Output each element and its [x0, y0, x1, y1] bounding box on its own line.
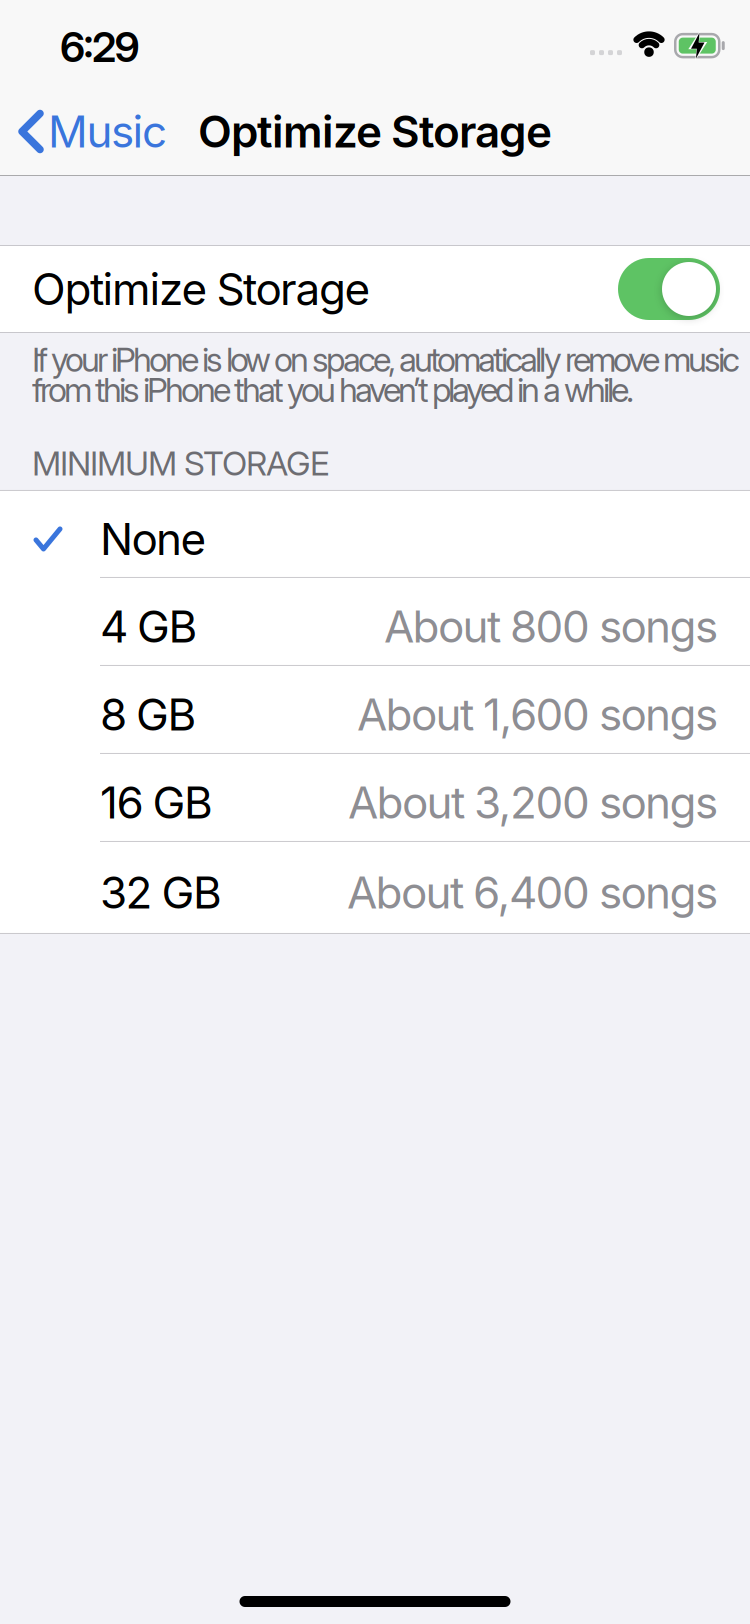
staticText: 32 GB: [100, 866, 222, 918]
staticText: Music: [48, 105, 167, 157]
staticText: 8 GB: [100, 688, 196, 740]
staticText: About 1,600 songs: [357, 688, 718, 740]
staticText: MINIMUM STORAGE: [32, 444, 330, 483]
staticText: About 800 songs: [384, 600, 718, 652]
button[interactable]: 16 GB: [0, 754, 750, 841]
staticText: 4 GB: [100, 600, 197, 652]
staticText: 16 GB: [100, 776, 213, 828]
staticText: If your iPhone is low on space, automati…: [32, 340, 740, 410]
staticText: Optimize Storage: [198, 105, 552, 157]
button[interactable]: Optimize Storage: [618, 258, 720, 320]
staticText: Optimize Storage: [32, 263, 370, 315]
button[interactable]: None: [0, 491, 750, 577]
staticText: About 6,400 songs: [347, 866, 718, 918]
staticText: About 3,200 songs: [348, 776, 718, 828]
button[interactable]: 8 GB: [0, 666, 750, 753]
button[interactable]: 4 GB: [0, 578, 750, 665]
button[interactable]: Back: [0, 105, 167, 157]
staticText: 6:29: [60, 23, 139, 71]
button[interactable]: 32 GB: [0, 842, 750, 933]
staticText: None: [100, 513, 206, 565]
